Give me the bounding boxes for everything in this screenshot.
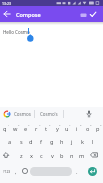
staticText: k: [81, 138, 84, 146]
button[interactable]: [85, 110, 93, 118]
staticText: w: [13, 125, 18, 133]
staticText: z: [20, 152, 23, 160]
staticText: r: [35, 125, 38, 133]
button[interactable]: f: [35, 135, 47, 148]
staticText: l: [92, 138, 94, 146]
staticText: 2: [18, 123, 20, 126]
button[interactable]: n: [66, 149, 78, 162]
staticText: y: [56, 125, 59, 133]
staticText: e: [24, 125, 28, 133]
button[interactable]: Cosmos: [12, 109, 33, 119]
staticText: c: [40, 152, 43, 160]
staticText: Compose: [16, 11, 41, 18]
staticText: h: [60, 138, 64, 146]
staticText: v: [51, 152, 54, 160]
button[interactable]: r: [30, 122, 42, 135]
button[interactable]: k: [76, 135, 88, 148]
button[interactable]: .: [71, 165, 83, 178]
staticText: 9: [90, 123, 92, 126]
button[interactable]: ?123: [1, 165, 13, 178]
button[interactable]: o: [82, 122, 94, 135]
button[interactable]: h: [56, 135, 68, 148]
button[interactable]: j: [66, 135, 78, 148]
button[interactable]: [88, 167, 97, 176]
staticText: Hello Cosmo: [3, 29, 30, 35]
staticText: a: [8, 138, 12, 146]
button[interactable]: b: [56, 149, 68, 162]
staticText: q: [3, 125, 7, 133]
button[interactable]: d: [25, 135, 37, 148]
button[interactable]: w: [9, 122, 21, 135]
button[interactable]: [1, 150, 11, 160]
staticText: o: [86, 125, 90, 133]
button[interactable]: u: [61, 122, 73, 135]
button[interactable]: i: [71, 122, 83, 135]
staticText: 13:23: [2, 1, 11, 6]
staticText: 6: [59, 123, 61, 126]
staticText: 8: [80, 123, 82, 126]
staticText: ?123: [3, 169, 11, 174]
staticText: 4: [39, 123, 41, 126]
staticText: u: [65, 125, 69, 133]
staticText: n: [70, 152, 74, 160]
button[interactable]: [30, 167, 72, 176]
button[interactable]: l: [87, 135, 99, 148]
staticText: j: [71, 138, 73, 146]
button[interactable]: [2, 9, 12, 19]
staticText: s: [20, 138, 23, 146]
staticText: p: [96, 125, 100, 133]
staticText: x: [30, 152, 33, 160]
staticText: g: [50, 138, 54, 146]
button[interactable]: t: [40, 122, 52, 135]
staticText: 7: [69, 123, 71, 126]
button[interactable]: y: [51, 122, 63, 135]
button[interactable]: s: [15, 135, 27, 148]
button[interactable]: c: [35, 149, 47, 162]
button[interactable]: [20, 166, 30, 176]
staticText: 3: [28, 123, 30, 126]
staticText: t: [45, 125, 48, 133]
staticText: d: [29, 138, 33, 146]
staticText: i: [76, 125, 78, 133]
staticText: 1: [8, 123, 10, 126]
button[interactable]: q: [0, 122, 11, 135]
button[interactable]: e: [20, 122, 32, 135]
button[interactable]: [89, 150, 99, 160]
button[interactable]: p: [92, 122, 103, 135]
staticText: 0: [100, 123, 102, 126]
button[interactable]: ,: [10, 165, 22, 178]
button[interactable]: Cosmo's: [37, 109, 61, 119]
staticText: f: [40, 138, 42, 146]
button[interactable]: [79, 10, 88, 19]
button[interactable]: g: [46, 135, 58, 148]
button[interactable]: m: [76, 149, 88, 162]
staticText: ,: [15, 168, 17, 176]
staticText: .: [76, 168, 78, 176]
button[interactable]: [88, 9, 98, 19]
button[interactable]: [3, 110, 11, 118]
staticText: Cosmos: [14, 111, 31, 117]
staticText: b: [60, 152, 64, 160]
button[interactable]: z: [15, 149, 27, 162]
staticText: m: [79, 152, 85, 160]
staticText: 5: [49, 123, 51, 126]
button[interactable]: a: [4, 135, 16, 148]
staticText: Cosmo's: [40, 111, 58, 117]
button[interactable]: x: [25, 149, 37, 162]
button[interactable]: v: [46, 149, 58, 162]
